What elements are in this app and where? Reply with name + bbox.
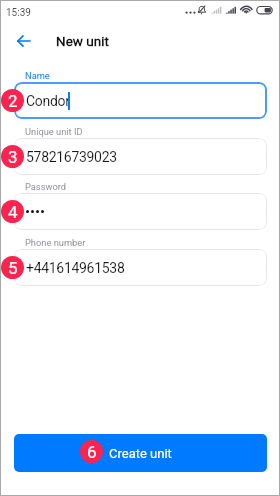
- staticText: 5: [8, 258, 18, 278]
- staticText: Create unit: [109, 446, 172, 461]
- staticText: 3: [8, 147, 18, 167]
- staticText: Password: [25, 181, 67, 192]
- staticText: 4: [8, 202, 18, 222]
- button[interactable]: Create unit: [14, 434, 267, 472]
- button[interactable]: [14, 193, 267, 230]
- staticText: Phone number: [25, 237, 86, 248]
- staticText: New unit: [56, 33, 109, 49]
- button[interactable]: 578216739023: [14, 138, 267, 175]
- staticText: +441614961538: [26, 260, 125, 276]
- button[interactable]: +441614961538: [14, 249, 267, 286]
- staticText: 2: [8, 91, 18, 111]
- button[interactable]: Back: [10, 28, 36, 54]
- staticText: Unique unit ID: [25, 126, 83, 137]
- staticText: 15:39: [6, 7, 31, 19]
- button[interactable]: Condor: [14, 82, 267, 119]
- staticText: 6: [87, 442, 97, 462]
- staticText: Condor: [26, 93, 70, 109]
- staticText: 578216739023: [26, 149, 117, 165]
- staticText: Name: [25, 70, 50, 81]
